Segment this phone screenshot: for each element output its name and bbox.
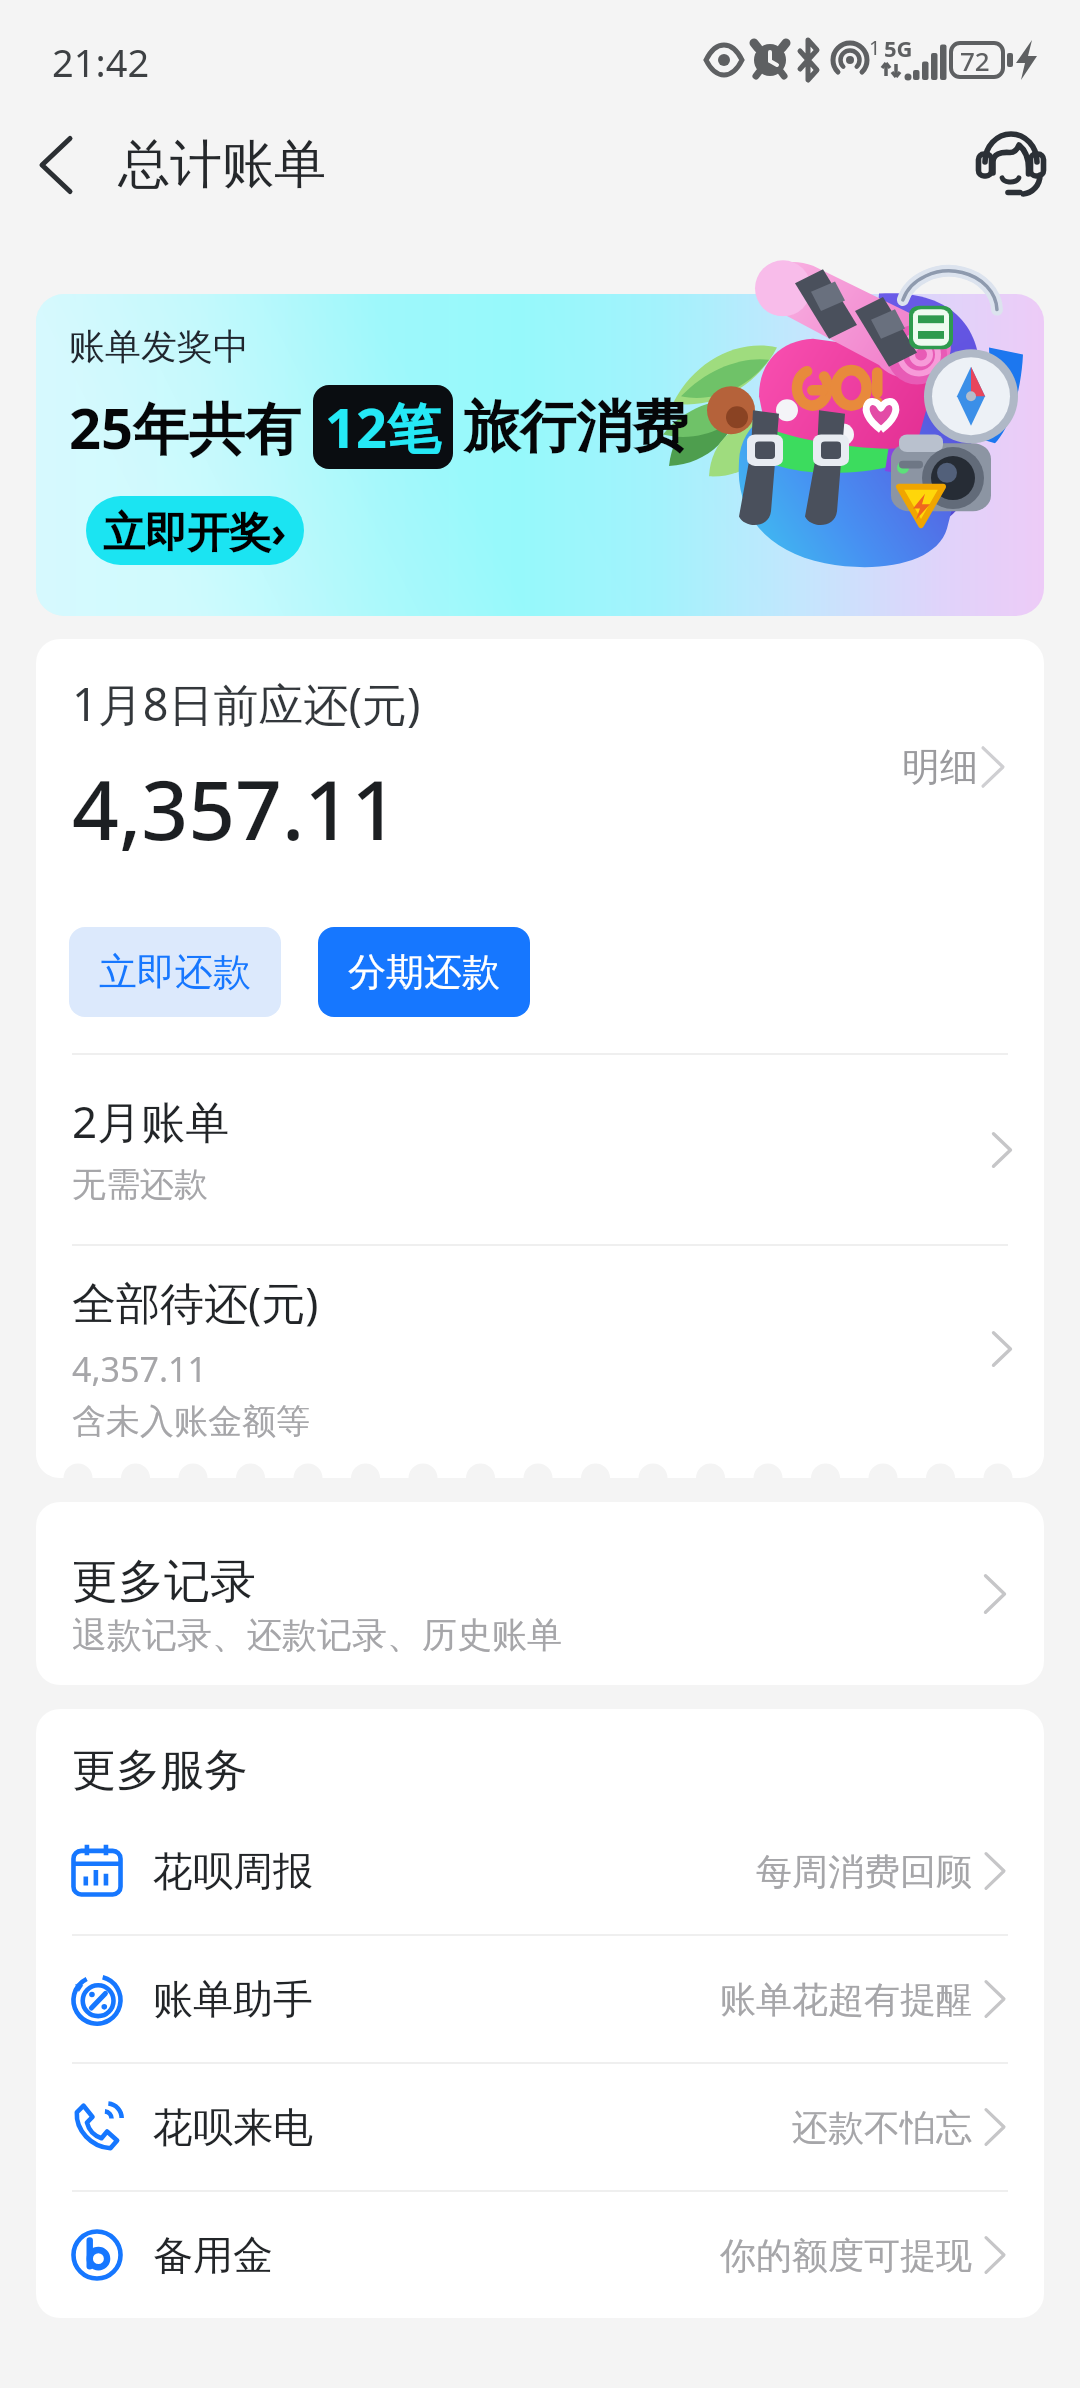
button[interactable]: 全部待还(元) bbox=[36, 1246, 1044, 1451]
staticText: 4,357.11 bbox=[72, 752, 399, 864]
staticText: 72 bbox=[960, 43, 990, 78]
button[interactable]: 分期还款 bbox=[318, 927, 530, 1017]
button[interactable]: Back bbox=[0, 132, 342, 198]
staticText: 立即开奖› bbox=[103, 502, 287, 559]
staticText: 退款记录、还款记录、历史账单 bbox=[72, 1613, 562, 1657]
button[interactable]: 立即还款 bbox=[69, 927, 281, 1017]
staticText: 更多服务 bbox=[72, 1743, 248, 1798]
staticText: 4,357.11 bbox=[72, 1346, 207, 1392]
button[interactable]: 备用金 bbox=[36, 2192, 1044, 2318]
staticText: 你的额度可提现 bbox=[720, 2233, 972, 2278]
staticText: 立即还款 bbox=[99, 948, 251, 996]
button[interactable]: 立即开奖› bbox=[86, 496, 304, 565]
staticText: 账单助手 bbox=[153, 1974, 720, 2024]
staticText: 备用金 bbox=[153, 2230, 720, 2280]
button[interactable]: 账单助手 bbox=[36, 1936, 1044, 2062]
button[interactable]: 明细 bbox=[902, 743, 1008, 791]
staticText: 2月账单 bbox=[72, 1091, 230, 1151]
staticText: 明细 bbox=[902, 743, 978, 791]
button[interactable] bbox=[36, 294, 1044, 616]
staticText: 21:42 bbox=[52, 36, 150, 88]
button[interactable]: 更多记录 bbox=[36, 1502, 1044, 1685]
staticText: 还款不怕忘 bbox=[792, 2105, 972, 2150]
staticText: 1 bbox=[869, 34, 881, 61]
staticText: 无需还款 bbox=[72, 1163, 208, 1206]
staticText: 每周消费回顾 bbox=[756, 1849, 972, 1894]
staticText: 总计账单 bbox=[118, 132, 326, 198]
staticText: 账单花超有提醒 bbox=[720, 1977, 972, 2022]
button[interactable]: 花呗周报 bbox=[36, 1808, 1044, 1934]
button[interactable]: Customer service bbox=[969, 123, 1053, 207]
staticText: 含未入账金额等 bbox=[72, 1400, 310, 1443]
other: Back bbox=[28, 137, 84, 193]
button[interactable]: 2月账单 bbox=[36, 1055, 1044, 1244]
staticText: 全部待还(元) bbox=[72, 1272, 319, 1332]
staticText: 更多记录 bbox=[72, 1553, 256, 1611]
staticText: 12笔 bbox=[325, 390, 441, 464]
staticText: 花呗周报 bbox=[153, 1846, 756, 1896]
staticText: 账单发奖中 bbox=[69, 324, 249, 369]
staticText: 分期还款 bbox=[348, 948, 500, 996]
staticText: 5G bbox=[884, 33, 913, 63]
staticText: 1月8日前应还(元) bbox=[72, 673, 421, 734]
staticText: 旅行消费 bbox=[464, 392, 688, 463]
staticText: 花呗来电 bbox=[153, 2102, 792, 2152]
staticText: 25年共有 bbox=[69, 389, 302, 465]
button[interactable]: 花呗来电 bbox=[36, 2064, 1044, 2190]
